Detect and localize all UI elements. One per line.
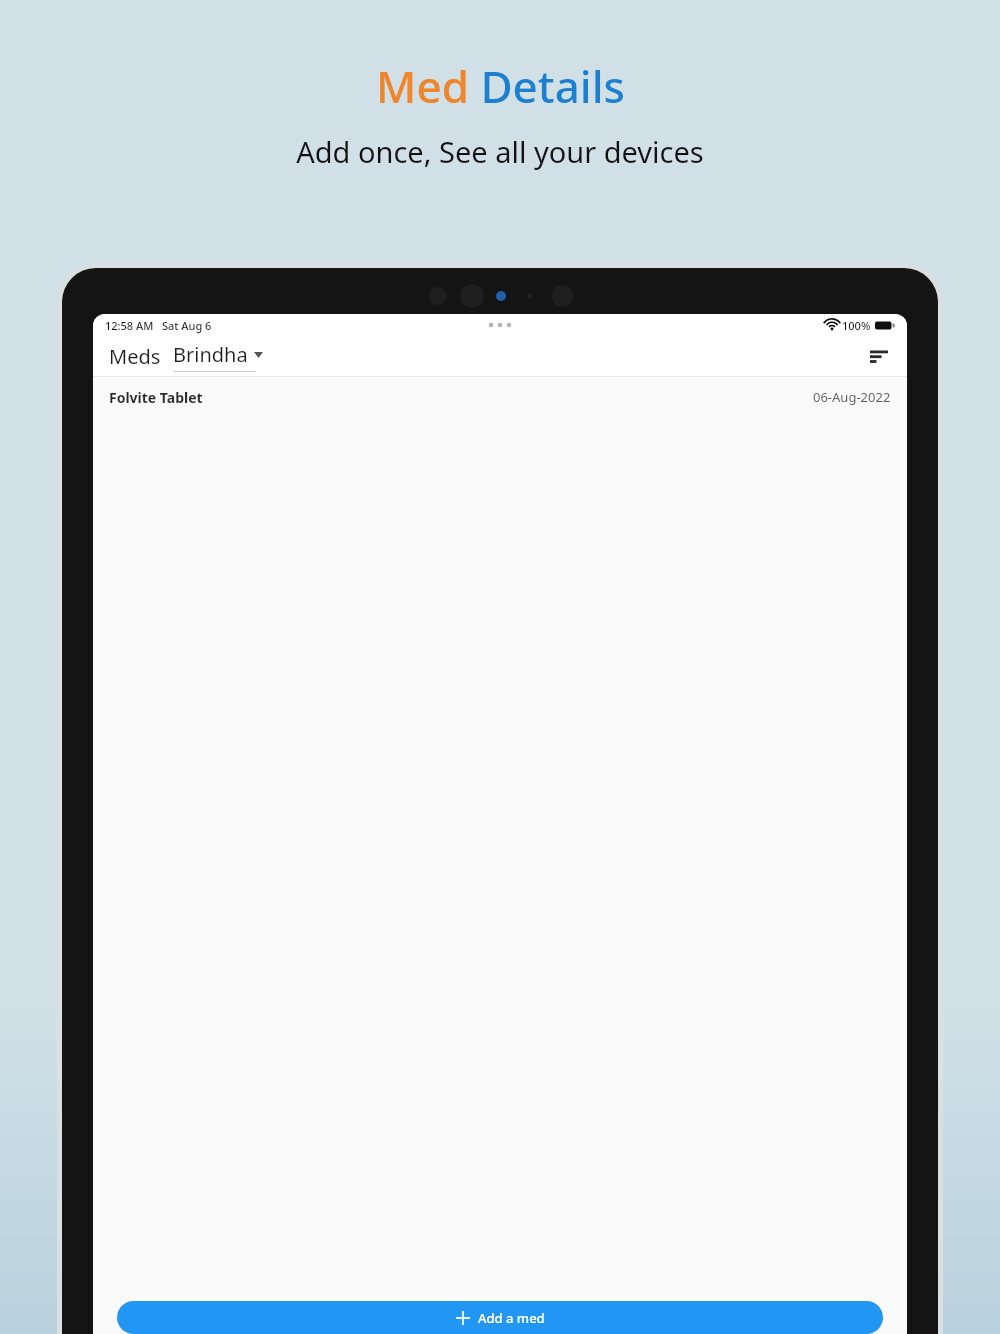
button[interactable]: Add a med <box>117 1301 883 1334</box>
staticText: 06-Aug-2022 <box>813 388 891 406</box>
staticText: 100% <box>842 318 871 333</box>
staticText: Med Details <box>376 56 625 116</box>
staticText: Meds <box>109 343 161 370</box>
staticText: Add a med <box>478 1309 545 1327</box>
button[interactable]: Folvite Tablet <box>93 377 907 417</box>
button[interactable]: Sort <box>863 340 895 372</box>
staticText: 12:58 AM Sat Aug 6 <box>105 318 212 333</box>
staticText: Brindha <box>173 341 248 368</box>
staticText: Add once, See all your devices <box>296 132 704 171</box>
button[interactable]: Brindha <box>173 341 263 372</box>
staticText: Folvite Tablet <box>109 388 203 407</box>
